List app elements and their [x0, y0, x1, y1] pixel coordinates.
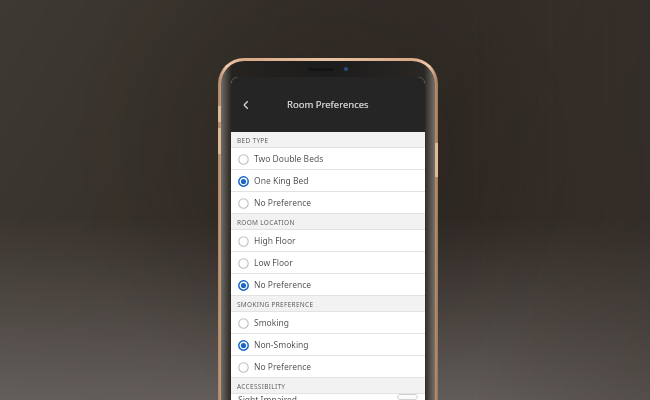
- staticText: BED TYPE: [237, 136, 269, 145]
- button[interactable]: No Preference: [231, 356, 425, 378]
- staticText: High Floor: [254, 235, 296, 247]
- staticText: Non-Smoking: [254, 339, 309, 351]
- staticText: Smoking: [254, 317, 289, 329]
- staticText: No Preference: [254, 279, 312, 291]
- staticText: One King Bed: [254, 175, 309, 187]
- staticText: Sight Impaired: [238, 394, 297, 400]
- staticText: No Preference: [254, 197, 312, 209]
- button[interactable]: Smoking: [231, 312, 425, 334]
- staticText: ACCESSIBILITY: [237, 382, 286, 391]
- staticText: ROOM LOCATION: [237, 218, 295, 227]
- staticText: SMOKING PREFERENCE: [237, 300, 314, 309]
- staticText: Low Floor: [254, 257, 293, 269]
- staticText: No Preference: [254, 361, 312, 373]
- staticText: Two Double Beds: [254, 153, 324, 165]
- button[interactable]: Sight Impaired: [231, 394, 425, 400]
- button[interactable]: Low Floor: [231, 252, 425, 274]
- button[interactable]: Back: [233, 92, 259, 118]
- button[interactable]: Non-Smoking: [231, 334, 425, 356]
- button[interactable]: No Preference: [231, 192, 425, 214]
- button[interactable]: No Preference: [231, 274, 425, 296]
- button[interactable]: High Floor: [231, 230, 425, 252]
- button[interactable]: Two Double Beds: [231, 148, 425, 170]
- button[interactable]: One King Bed: [231, 170, 425, 192]
- staticText: Room Preferences: [287, 98, 369, 111]
